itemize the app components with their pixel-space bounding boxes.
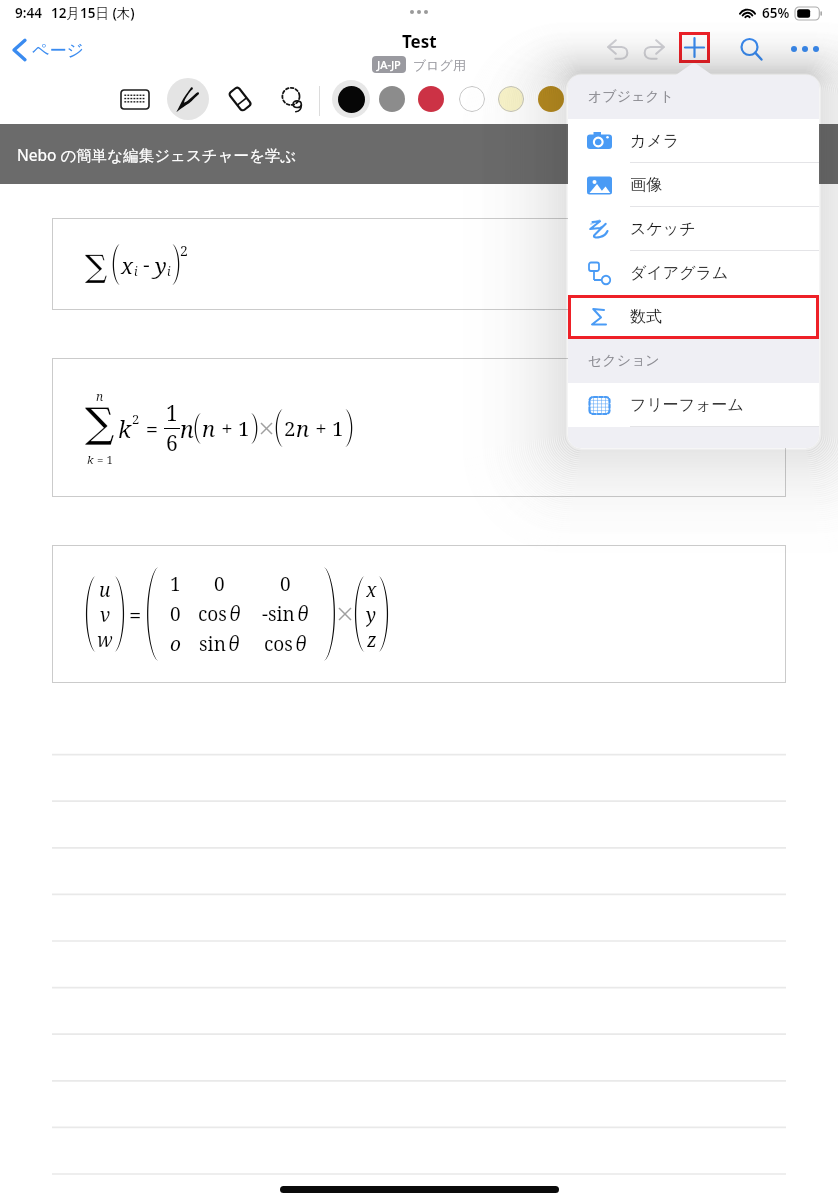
- staticText: n: [296, 413, 310, 443]
- button[interactable]: Pen: [167, 78, 209, 120]
- staticText: =: [140, 413, 164, 443]
- staticText: 2: [284, 414, 296, 442]
- button[interactable]: Grey: [379, 86, 405, 112]
- staticText: ページ: [32, 40, 84, 61]
- button[interactable]: ∑: [52, 218, 786, 310]
- button[interactable]: Lasso: [272, 79, 312, 119]
- staticText: オブジェクト: [588, 88, 674, 106]
- staticText: k: [118, 413, 132, 444]
- staticText: カメラ: [630, 131, 680, 151]
- staticText: 0: [280, 571, 291, 597]
- staticText: ダイアグラム: [630, 263, 729, 283]
- button[interactable]: Redo: [639, 34, 669, 64]
- button[interactable]: ページ: [9, 35, 88, 65]
- button[interactable]: ダイアグラム: [568, 251, 819, 295]
- staticText: ∑: [85, 248, 108, 284]
- staticText: + 1: [310, 414, 344, 442]
- staticText: 2: [180, 241, 188, 260]
- staticText: -: [138, 251, 155, 278]
- staticText: = 1: [94, 452, 113, 468]
- staticText: n: [96, 388, 104, 404]
- staticText: 6: [166, 429, 178, 458]
- button[interactable]: スケッチ: [568, 207, 819, 251]
- button[interactable]: Gold: [538, 86, 564, 112]
- staticText: n: [202, 413, 216, 443]
- staticText: sin: [199, 631, 226, 657]
- staticText: 0: [214, 571, 225, 597]
- button[interactable]: Red: [418, 86, 444, 112]
- staticText: 数式: [630, 307, 662, 327]
- staticText: 65%: [762, 4, 790, 22]
- staticText: ∑: [85, 399, 115, 447]
- staticText: w: [97, 627, 113, 652]
- button[interactable]: n: [52, 358, 786, 497]
- staticText: n: [180, 413, 194, 444]
- button[interactable]: Black: [332, 80, 370, 118]
- button[interactable]: 画像: [568, 163, 819, 207]
- button[interactable]: 数式: [568, 295, 819, 339]
- staticText: フリーフォーム: [630, 395, 744, 415]
- staticText: Nebo の簡単な編集ジェスチャーを学ぶ: [17, 144, 297, 165]
- staticText: 1: [166, 399, 178, 428]
- staticText: ブログ用: [413, 57, 466, 73]
- staticText: i: [134, 263, 138, 279]
- button[interactable]: Eraser: [220, 79, 260, 119]
- button[interactable]: Search: [736, 34, 766, 64]
- staticText: θ: [295, 631, 307, 657]
- staticText: 2: [132, 410, 140, 428]
- button[interactable]: カメラ: [568, 119, 819, 163]
- staticText: 画像: [630, 175, 662, 195]
- staticText: cos: [198, 601, 227, 627]
- staticText: θ: [228, 631, 240, 657]
- staticText: o: [170, 631, 181, 657]
- staticText: z: [367, 627, 377, 652]
- button[interactable]: u: [52, 545, 786, 683]
- button[interactable]: White: [459, 86, 485, 112]
- button[interactable]: Keyboard: [115, 79, 155, 119]
- staticText: y: [155, 250, 167, 280]
- staticText: JA-JP: [377, 57, 401, 72]
- button[interactable]: Cream: [498, 86, 524, 112]
- staticText: 0: [170, 601, 181, 627]
- button[interactable]: Add: [679, 32, 710, 63]
- staticText: x: [366, 577, 377, 602]
- staticText: 9:44: [15, 4, 42, 22]
- staticText: -sin: [262, 601, 295, 627]
- staticText: =: [129, 599, 142, 629]
- staticText: 1: [170, 571, 181, 597]
- staticText: i: [167, 263, 171, 279]
- staticText: セクション: [588, 352, 660, 370]
- staticText: cos: [264, 631, 293, 657]
- staticText: スケッチ: [630, 219, 696, 239]
- button[interactable]: フリーフォーム: [568, 383, 819, 427]
- staticText: k: [87, 452, 94, 468]
- staticText: θ: [297, 601, 309, 627]
- staticText: θ: [229, 601, 241, 627]
- staticText: v: [100, 602, 111, 627]
- staticText: y: [366, 602, 377, 627]
- staticText: Test: [402, 30, 437, 53]
- staticText: x: [121, 250, 134, 280]
- staticText: 12月15日 (木): [51, 4, 135, 22]
- button[interactable]: More options: [790, 34, 820, 64]
- button[interactable]: Undo: [603, 34, 633, 64]
- staticText: u: [99, 577, 111, 602]
- staticText: + 1: [216, 414, 250, 442]
